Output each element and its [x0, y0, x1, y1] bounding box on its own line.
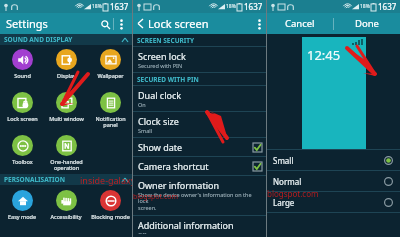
staticText: Done: [355, 17, 379, 30]
button[interactable]: Lock screen: [0, 88, 44, 131]
staticText: Off: [138, 231, 147, 234]
button[interactable]: One-handed operation: [44, 131, 88, 174]
staticText: Secured with PIN: [138, 62, 183, 69]
staticText: Small: [138, 127, 153, 134]
staticText: Show date: [138, 141, 183, 153]
staticText: Easy mode: [8, 213, 36, 220]
staticText: Show the device owner's information on t…: [138, 191, 262, 212]
staticText: Blocking mode: [91, 213, 130, 220]
button[interactable]: Display: [44, 45, 88, 88]
staticText: Clock size: [138, 115, 179, 127]
button[interactable]: Large: [267, 192, 400, 213]
staticText: Camera shortcut: [138, 160, 209, 172]
staticText: Wallpaper: [97, 72, 124, 79]
staticText: inside-galaxy: [80, 174, 136, 186]
button[interactable]: Normal: [267, 171, 400, 192]
button[interactable]: Lock screen: [133, 16, 209, 31]
staticText: Settings: [6, 16, 48, 31]
staticText: Toolbox: [12, 158, 33, 165]
button[interactable]: Cancel: [267, 13, 333, 34]
staticText: Cancel: [285, 17, 315, 30]
staticText: SCREEN SECURITY: [137, 36, 195, 45]
button[interactable]: Show date: [133, 138, 266, 157]
button[interactable]: Search: [97, 16, 113, 32]
staticText: SOUND AND DISPLAY: [4, 35, 73, 44]
staticText: Sound: [14, 72, 31, 79]
button[interactable]: Wallpaper: [88, 45, 132, 88]
button[interactable]: Camera shortcut: [133, 157, 266, 176]
button[interactable]: Owner information: [133, 176, 266, 216]
staticText: Lock screen: [7, 115, 38, 122]
staticText: Screen lock: [138, 50, 186, 62]
button[interactable]: Toolbox: [0, 131, 44, 174]
staticText: 12:45: [307, 46, 341, 64]
staticText: 18%: [226, 3, 236, 10]
staticText: Display: [57, 72, 76, 79]
staticText: Small: [273, 155, 384, 166]
staticText: One-handed operation: [50, 158, 83, 172]
staticText: Multi window: [49, 115, 84, 122]
staticText: SECURED WITH PIN: [137, 75, 199, 84]
button[interactable]: More options: [252, 17, 266, 31]
staticText: 1637: [378, 1, 397, 12]
staticText: Additional information: [138, 219, 234, 231]
staticText: blogspot.com: [267, 188, 319, 199]
button[interactable]: Easy mode: [0, 186, 44, 229]
staticText: Normal: [273, 176, 384, 187]
button[interactable]: Dual clock: [133, 86, 266, 112]
staticText: 18%: [92, 3, 102, 10]
button[interactable]: Additional information: [133, 216, 266, 237]
staticText: Large: [273, 197, 384, 208]
staticText: Owner information: [138, 179, 219, 191]
button[interactable]: Small: [267, 150, 400, 171]
staticText: Dual clock: [138, 89, 182, 101]
button[interactable]: Screen lock: [133, 47, 266, 73]
button[interactable]: Done: [334, 13, 400, 34]
staticText: Notification panel: [95, 115, 126, 129]
staticText: On: [138, 101, 146, 108]
button[interactable]: Blocking mode: [88, 186, 132, 229]
button[interactable]: Accessibility: [44, 186, 88, 229]
button[interactable]: Multi window: [44, 88, 88, 131]
staticText: 1637: [110, 1, 129, 12]
staticText: 1637: [244, 1, 263, 12]
staticText: Lock screen: [148, 16, 209, 31]
button[interactable]: More options: [114, 17, 128, 31]
staticText: 18%: [360, 3, 370, 10]
staticText: blogspot.com: [133, 192, 179, 202]
button[interactable]: Clock size: [133, 112, 266, 138]
staticText: Accessibility: [50, 213, 82, 220]
button[interactable]: Notification panel: [88, 88, 132, 131]
button[interactable]: Sound: [0, 45, 44, 88]
staticText: PERSONALISATION: [4, 175, 65, 184]
